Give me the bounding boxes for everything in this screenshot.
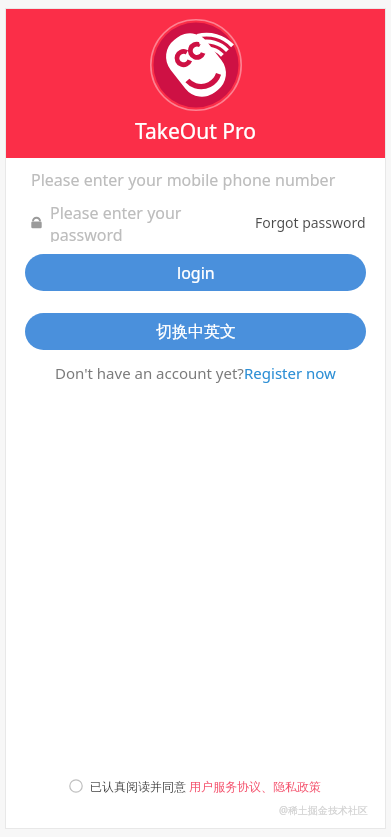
staticText: 已认真阅读并同意 用户服务协议、隐私政策	[90, 778, 322, 794]
button[interactable]: 切换中英文	[25, 313, 366, 350]
button[interactable]: login	[25, 254, 366, 291]
staticText: TakeOut Pro	[135, 117, 256, 146]
button[interactable]: Forgot password	[255, 213, 366, 232]
staticText: Forgot password	[255, 213, 366, 232]
staticText: Please enter your password	[50, 202, 255, 242]
button[interactable]: Agree checkbox	[5, 778, 386, 794]
staticText: login	[177, 262, 215, 284]
staticText: 切换中英文	[156, 322, 236, 342]
staticText: Register now	[244, 363, 336, 383]
button[interactable]: Please enter your mobile phone number	[5, 158, 386, 202]
staticText: @稀土掘金技术社区	[279, 803, 368, 817]
staticText: Don't have an account yet?	[55, 363, 244, 383]
button[interactable]: Register now	[244, 363, 336, 383]
button[interactable]: Please enter your password	[30, 202, 255, 242]
other: Agree checkbox	[69, 779, 83, 793]
staticText: Please enter your mobile phone number	[31, 169, 336, 191]
